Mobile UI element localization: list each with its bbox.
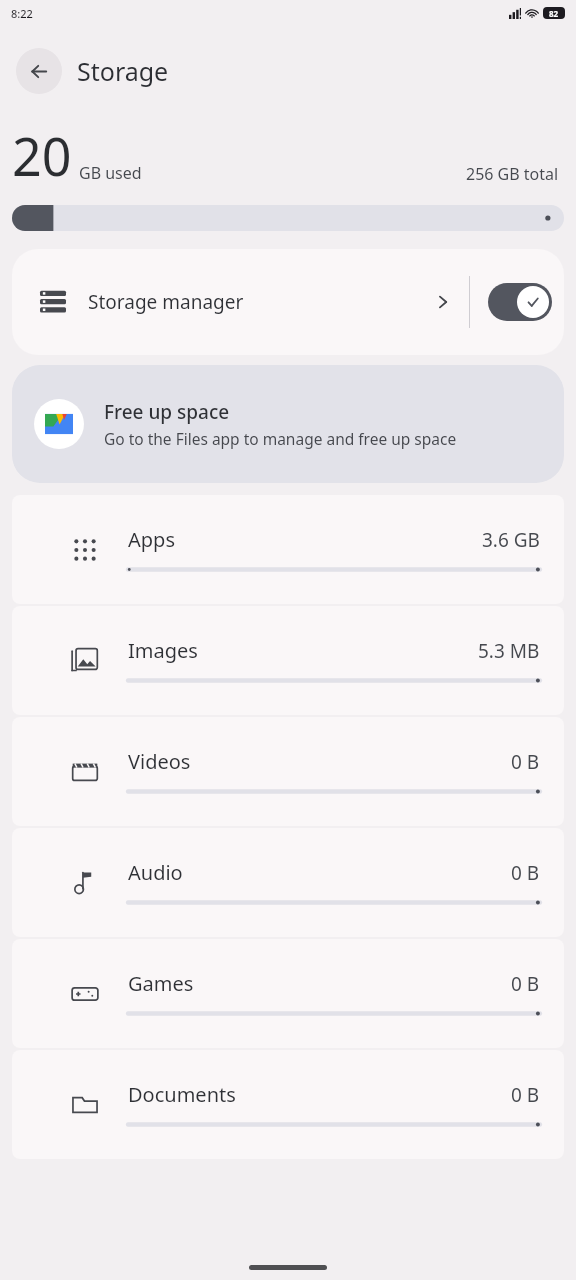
button[interactable]: Storage manager <box>12 249 564 355</box>
staticText: 0 B <box>511 1082 540 1108</box>
staticText: Documents <box>128 1081 511 1108</box>
staticText: Apps <box>128 526 482 553</box>
button[interactable]: Images <box>12 606 564 715</box>
staticText: Videos <box>128 748 511 775</box>
staticText: GB used <box>79 162 142 184</box>
button[interactable]: Free up space <box>12 365 564 483</box>
staticText: Storage manager <box>88 289 434 315</box>
staticText: 82 <box>549 8 559 19</box>
staticText: 20 <box>12 120 72 191</box>
button[interactable]: Videos <box>12 717 564 826</box>
staticText: 0 B <box>511 971 540 997</box>
staticText: Storage <box>77 54 169 88</box>
staticText: Images <box>128 637 478 664</box>
button[interactable]: Apps <box>12 495 564 604</box>
button[interactable]: Audio <box>12 828 564 937</box>
staticText: Go to the Files app to manage and free u… <box>104 428 457 449</box>
staticText: 5.3 MB <box>478 638 540 664</box>
staticText: 0 B <box>511 749 540 775</box>
staticText: 3.6 GB <box>482 527 540 553</box>
button[interactable]: Back <box>16 48 62 94</box>
staticText: 256 GB total <box>466 163 559 185</box>
staticText: Audio <box>128 859 511 886</box>
button[interactable]: Storage manager toggle <box>488 283 552 321</box>
staticText: Free up space <box>104 399 230 425</box>
staticText: 8:22 <box>11 6 33 21</box>
staticText: Games <box>128 970 511 997</box>
button[interactable]: Games <box>12 939 564 1048</box>
staticText: 0 B <box>511 860 540 886</box>
button[interactable]: Documents <box>12 1050 564 1159</box>
